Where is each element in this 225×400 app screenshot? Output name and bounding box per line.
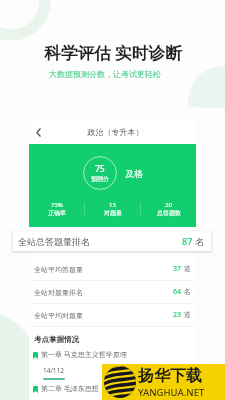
button[interactable]: 全站平均对题量: [29, 304, 196, 326]
staticText: 14/112: [43, 366, 65, 375]
staticText: 全站对题量排名: [34, 288, 173, 297]
staticText: 20: [165, 201, 172, 209]
staticText: 第二章 毛泽东思想: [41, 384, 99, 394]
button[interactable]: 第一章 马克思主义哲学原理: [29, 350, 196, 384]
staticText: 23: [173, 310, 182, 320]
staticText: 及格: [125, 168, 143, 179]
staticText: 科学评估 实时诊断: [44, 41, 182, 64]
staticText: 正确率: [48, 209, 66, 217]
staticText: 全站平均对题量: [34, 311, 173, 320]
staticText: 15: [109, 201, 116, 209]
staticText: 道: [182, 310, 191, 320]
staticText: 64: [173, 287, 182, 297]
button[interactable]: 全站平均答题量: [29, 258, 196, 280]
staticText: 75: [95, 163, 105, 175]
staticText: 总答题数: [157, 209, 181, 217]
staticText: 名: [182, 287, 191, 297]
staticText: 考点掌握情况: [34, 335, 79, 344]
button[interactable]: 全站对题量排名: [29, 281, 196, 303]
button[interactable]: Back: [29, 120, 48, 144]
staticText: 75%: [51, 201, 63, 209]
staticText: 对题量: [104, 209, 122, 217]
staticText: 扬华下载: [138, 366, 202, 386]
staticText: 名: [193, 235, 205, 247]
staticText: 87: [182, 235, 193, 247]
button[interactable]: 第二章 毛泽东思想: [29, 384, 196, 400]
button[interactable]: 全站总答题量排名: [13, 231, 211, 251]
staticText: YANGHUA.NET: [138, 386, 205, 399]
staticText: 37: [173, 264, 182, 274]
staticText: 全站总答题量排名: [18, 236, 182, 247]
staticText: 道: [182, 264, 191, 274]
staticText: 第一章 马克思主义哲学原理: [41, 350, 127, 360]
staticText: 全站平均答题量: [34, 265, 173, 274]
staticText: 大数据预测分数，让考试更轻松: [49, 69, 161, 79]
staticText: 政治（专升本）: [48, 127, 183, 137]
staticText: 预测分: [91, 175, 109, 183]
